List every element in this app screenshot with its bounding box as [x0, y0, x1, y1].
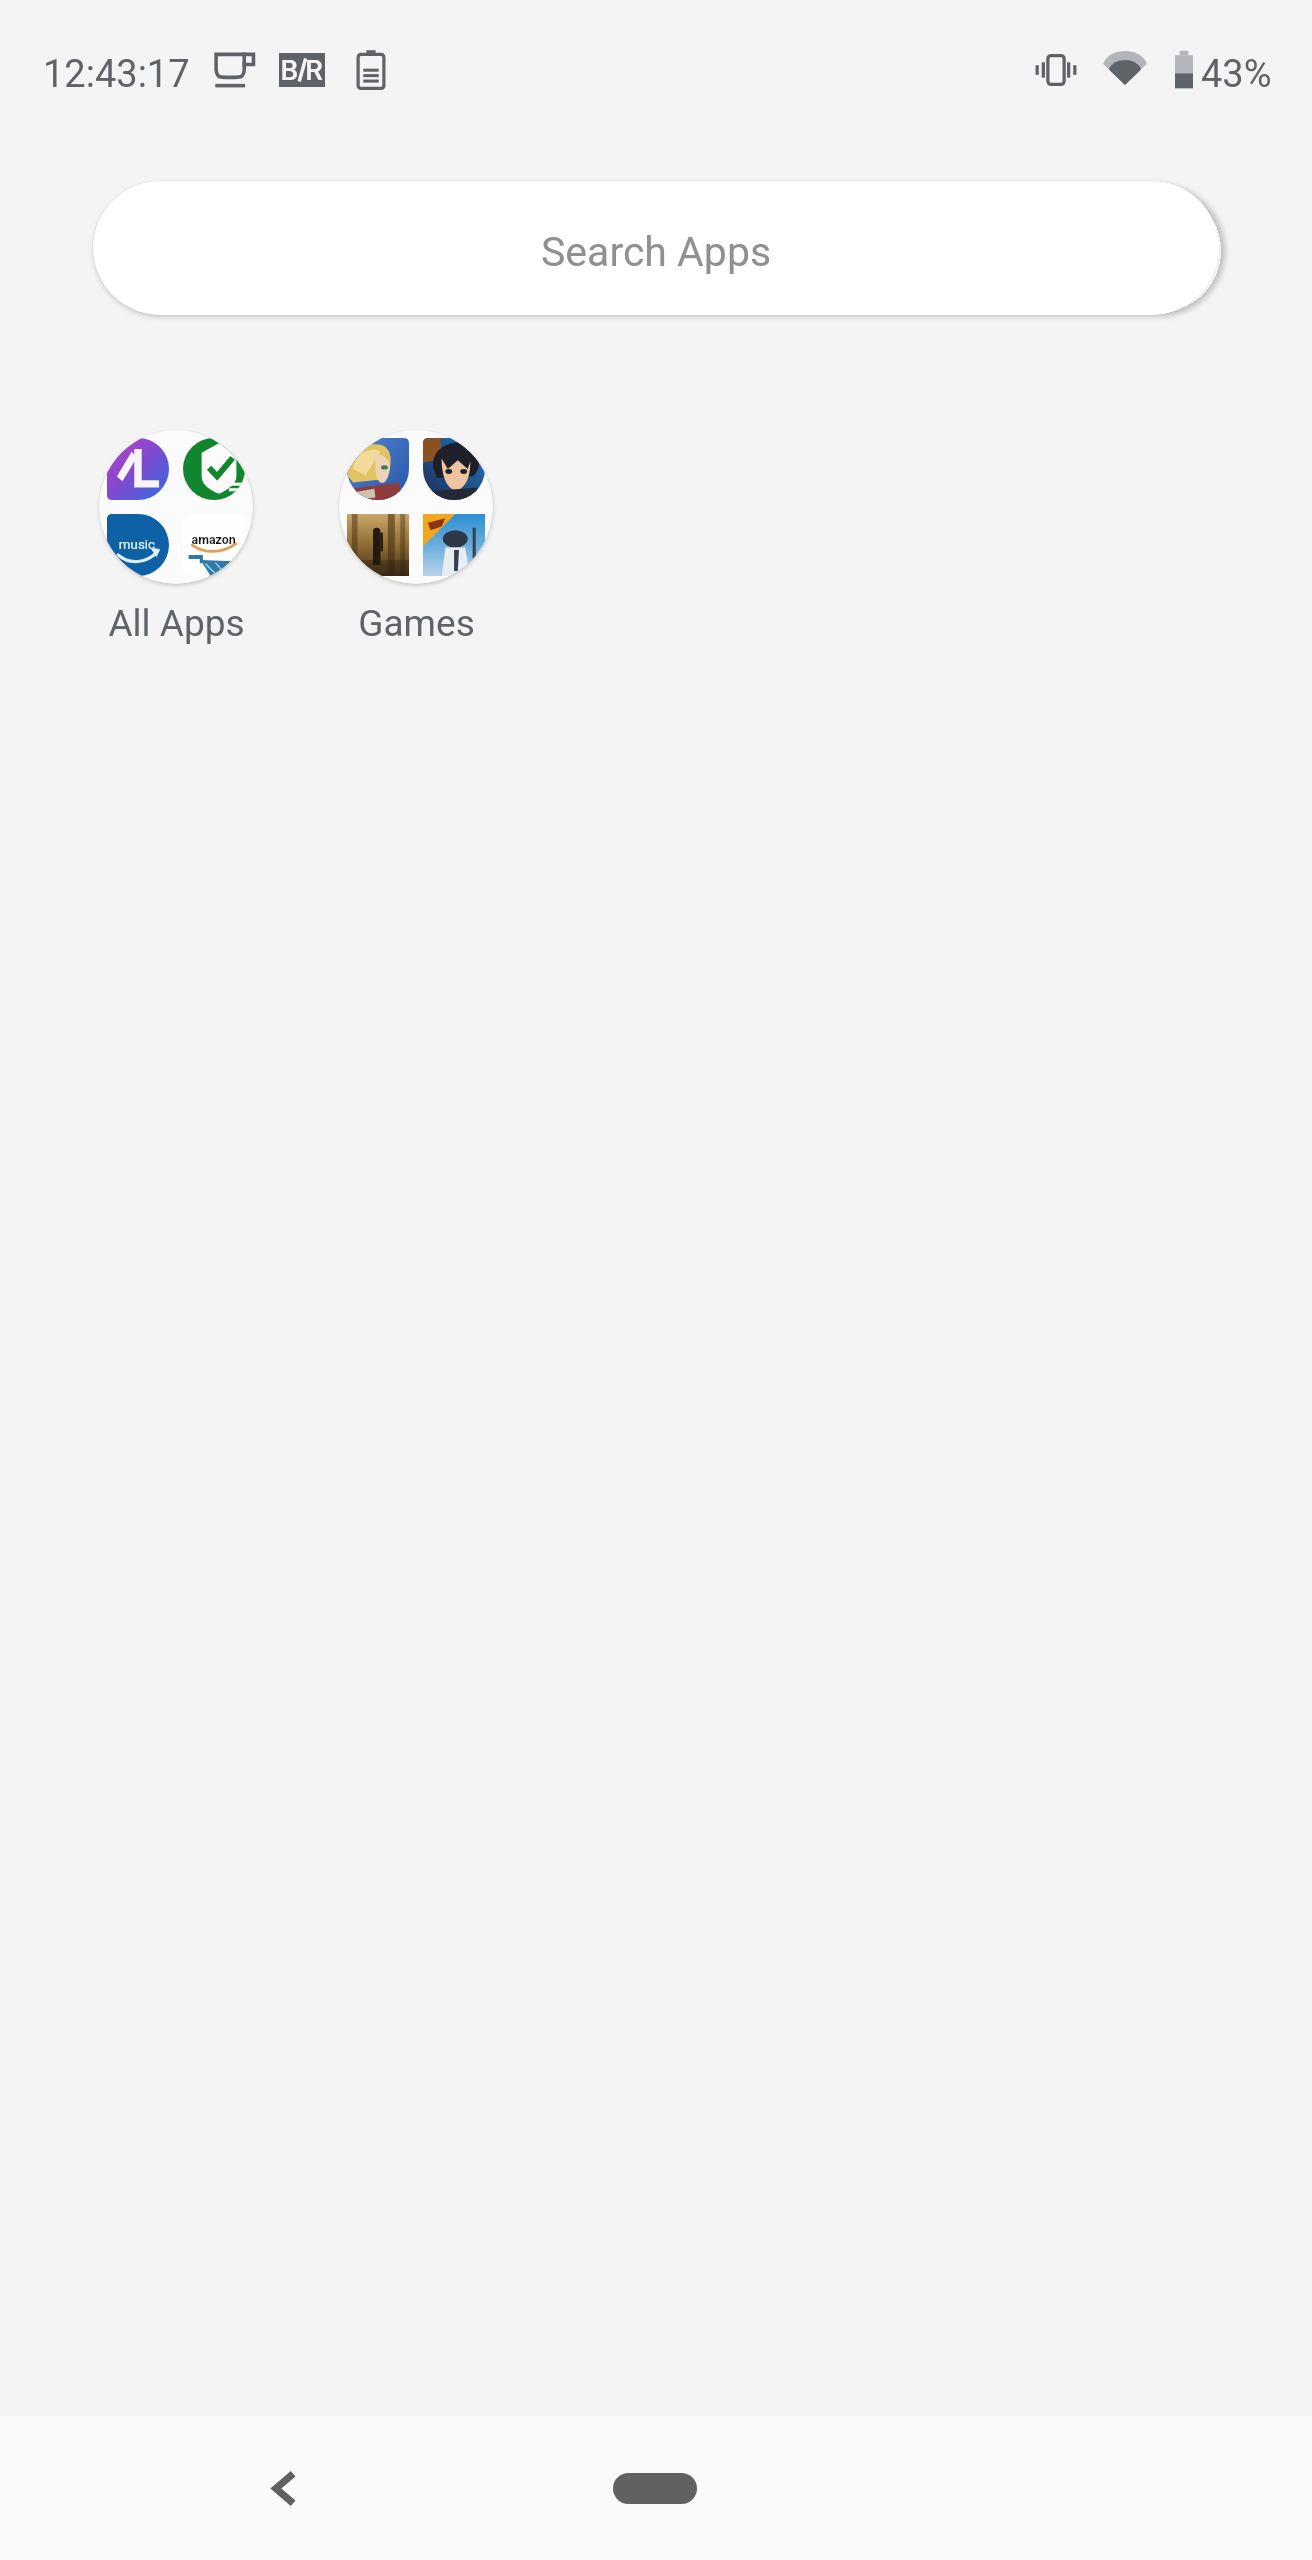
button[interactable]: Home — [575, 2448, 735, 2528]
button[interactable]: All Apps — [56, 430, 296, 645]
staticText: All Apps — [108, 602, 245, 645]
staticText: 12:43:17 — [43, 52, 190, 97]
button[interactable]: Games — [296, 430, 536, 645]
staticText: Search Apps — [541, 228, 772, 276]
staticText: Games — [358, 602, 475, 645]
staticText: 43% — [1201, 52, 1272, 97]
button[interactable]: Search Apps — [93, 181, 1219, 315]
button[interactable]: Back — [224, 2428, 344, 2548]
